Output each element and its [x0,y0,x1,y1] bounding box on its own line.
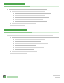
button[interactable]: Section heading [4,29,59,33]
button[interactable]: Section heading [4,3,59,7]
button[interactable]: Page footer [53,75,60,78]
button[interactable]: Company logo [3,75,18,78]
button[interactable] [4,9,59,26]
button[interactable] [4,35,59,54]
